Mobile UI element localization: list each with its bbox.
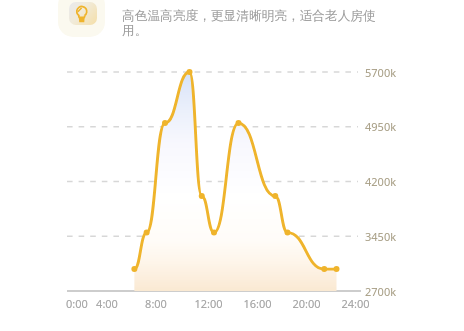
staticText: 4:00 [96,296,118,311]
staticText: 16:00 [243,296,272,311]
button[interactable]: Lighting scene [58,0,105,37]
staticText: 5700k [365,65,397,80]
staticText: 4950k [365,119,397,134]
staticText: 高色温高亮度，更显清晰明亮，适合老人房使用。 [122,8,398,39]
staticText: 4200k [365,174,397,189]
staticText: 2700k [365,284,397,299]
staticText: 3450k [365,229,397,244]
staticText: 8:00 [145,296,167,311]
staticText: 0:00 [66,296,88,311]
staticText: 20:00 [292,296,321,311]
staticText: 24:00 [341,296,370,311]
staticText: 12:00 [194,296,223,311]
